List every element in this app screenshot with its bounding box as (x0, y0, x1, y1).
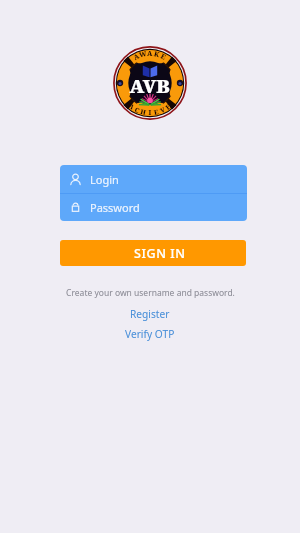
button[interactable]: Register (124, 305, 176, 323)
button[interactable]: Verify OTP (119, 325, 181, 343)
staticText: Password (90, 200, 140, 215)
staticText: SIGN IN (134, 245, 186, 262)
staticText: Verify OTP (125, 327, 175, 341)
other: Password (69, 201, 82, 214)
staticText: Create your own username and password. (66, 287, 235, 299)
staticText: Register (130, 307, 170, 321)
button[interactable]: SIGN IN (60, 240, 246, 266)
staticText: Login (90, 172, 119, 187)
other: Login (69, 173, 82, 186)
button[interactable]: Login (60, 165, 247, 193)
button[interactable]: Password (60, 194, 247, 221)
